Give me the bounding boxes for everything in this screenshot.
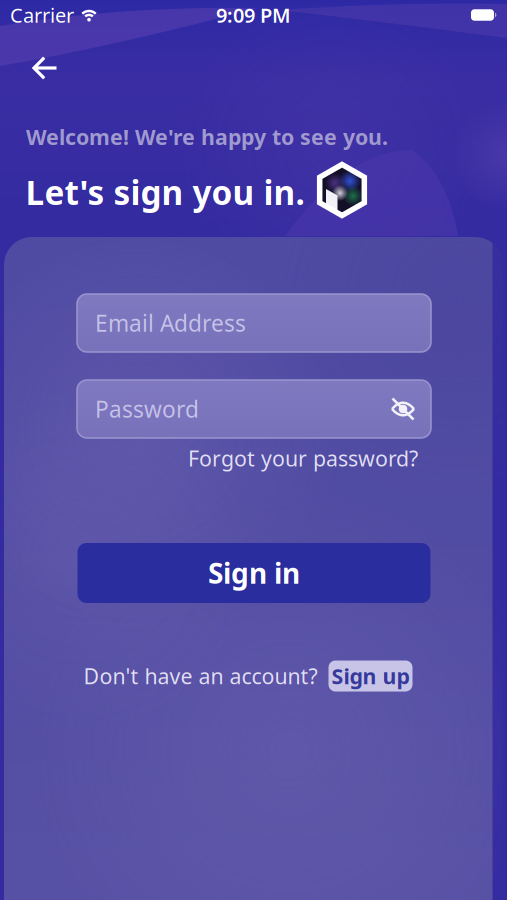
staticText: Carrier bbox=[10, 2, 74, 28]
button[interactable]: Back bbox=[23, 48, 67, 88]
staticText: Password bbox=[95, 394, 199, 424]
staticText: 9:09 PM bbox=[216, 2, 291, 28]
button[interactable]: Show password bbox=[389, 397, 417, 421]
staticText: Email Address bbox=[95, 308, 246, 338]
button[interactable]: Email Address bbox=[77, 294, 431, 352]
staticText: Sign in bbox=[208, 554, 300, 592]
button[interactable]: Password bbox=[77, 380, 431, 438]
staticText: Welcome! We're happy to see you. bbox=[26, 122, 388, 151]
button[interactable]: Sign in bbox=[77, 543, 430, 603]
button[interactable]: Sign up bbox=[328, 660, 412, 691]
staticText: Don't have an account? bbox=[83, 662, 317, 690]
button[interactable]: Forgot your password? bbox=[188, 444, 418, 472]
staticText: Let's sign you in. bbox=[25, 170, 304, 214]
staticText: Forgot your password? bbox=[188, 444, 418, 472]
staticText: Sign up bbox=[331, 662, 409, 690]
